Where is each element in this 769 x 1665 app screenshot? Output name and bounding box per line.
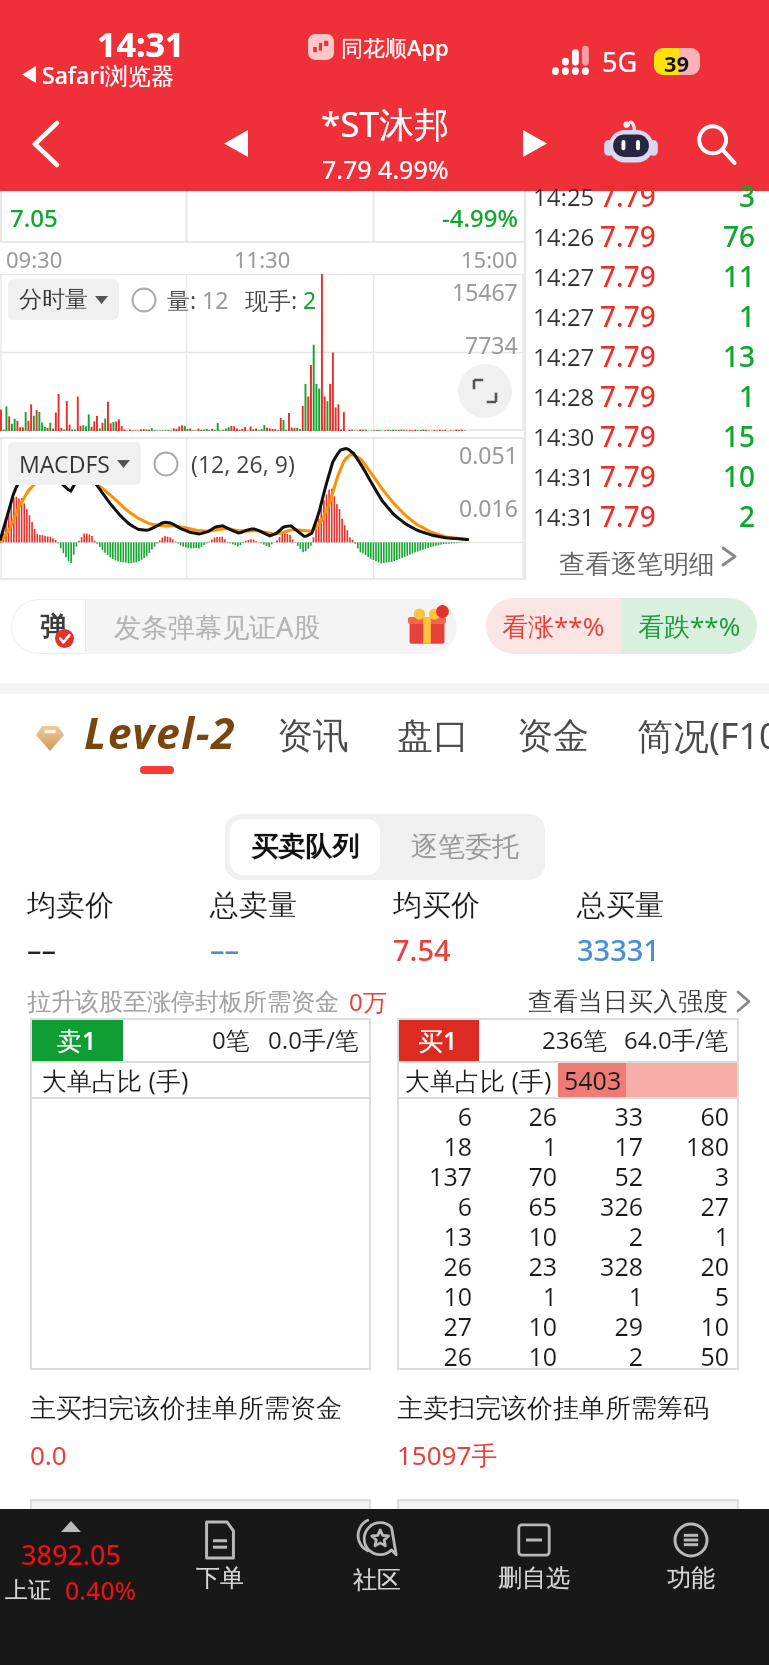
button[interactable]: 资讯 bbox=[277, 713, 349, 764]
staticText: 7.54 bbox=[393, 930, 451, 969]
staticText: 0万 bbox=[349, 985, 387, 1018]
staticText: 15:00 bbox=[461, 244, 518, 274]
button[interactable]: 看跌**% bbox=[621, 598, 757, 654]
staticText: 11:30 bbox=[234, 244, 291, 274]
staticText: 14:25 bbox=[533, 180, 595, 213]
button[interactable]: 14:27 bbox=[533, 296, 756, 336]
staticText: 看涨**% bbox=[502, 608, 605, 644]
button[interactable]: 删自选 bbox=[455, 1509, 612, 1665]
staticText: 5 bbox=[653, 1279, 729, 1309]
button[interactable]: 简况(F10 bbox=[637, 711, 769, 766]
button[interactable]: 看涨**% bbox=[486, 598, 621, 654]
staticText: 均卖价 bbox=[27, 887, 114, 924]
staticText: 社区 bbox=[353, 1565, 401, 1595]
staticText: 10 bbox=[482, 1339, 557, 1369]
staticText: 7.79 bbox=[600, 257, 656, 295]
staticText: 65 bbox=[482, 1189, 557, 1219]
staticText: 14:31 bbox=[97, 21, 185, 67]
button[interactable]: 3892.05 bbox=[0, 1509, 142, 1665]
staticText: 盘口 bbox=[397, 713, 469, 758]
staticText: 26 bbox=[397, 1339, 472, 1369]
button[interactable]: 下单 bbox=[142, 1509, 298, 1665]
staticText: 查看当日买入强度 bbox=[528, 986, 728, 1017]
button[interactable]: 14:27 bbox=[533, 256, 756, 296]
button[interactable]: 查看当日买入强度 bbox=[528, 986, 749, 1017]
staticText: 7.79 bbox=[600, 457, 656, 495]
button[interactable]: 均卖价 bbox=[27, 887, 210, 969]
staticText: 7.79 bbox=[600, 177, 656, 215]
button[interactable]: Back bbox=[0, 96, 92, 191]
button[interactable]: 14:31 bbox=[533, 456, 756, 496]
staticText: 0.0手/笔 bbox=[268, 1023, 359, 1056]
button[interactable]: Fullscreen bbox=[458, 364, 512, 418]
staticText: 7.79 bbox=[600, 497, 656, 535]
staticText: 0.016 bbox=[459, 492, 518, 523]
button[interactable]: 14:28 bbox=[533, 376, 756, 416]
button[interactable]: 弹 bbox=[11, 599, 457, 654]
staticText: 2 bbox=[567, 1339, 643, 1369]
button[interactable]: 14:26 bbox=[533, 216, 756, 256]
staticText: 1 bbox=[653, 1219, 729, 1249]
staticText: 10 bbox=[482, 1309, 557, 1339]
staticText: 大单占比 (手) bbox=[42, 1063, 189, 1097]
button[interactable]: 总买量 bbox=[577, 887, 761, 969]
staticText: 1 bbox=[739, 377, 756, 415]
button[interactable]: 分时量 bbox=[8, 279, 119, 320]
staticText: 简况(F10 bbox=[637, 711, 769, 760]
button[interactable]: 查看逐笔明细 bbox=[524, 548, 769, 565]
button[interactable]: 14:25 bbox=[533, 176, 756, 216]
staticText: 卖1 bbox=[57, 1023, 97, 1057]
staticText: 14:31 bbox=[533, 460, 595, 493]
staticText: 15097手 bbox=[397, 1437, 498, 1473]
staticText: 20 bbox=[653, 1249, 729, 1279]
staticText: 买1 bbox=[418, 1023, 458, 1057]
button[interactable]: 均买价 bbox=[393, 887, 577, 969]
staticText: 15 bbox=[723, 417, 756, 455]
button[interactable]: Search bbox=[673, 96, 759, 191]
button[interactable]: 14:30 bbox=[533, 416, 756, 456]
staticText: 7.79 bbox=[600, 217, 656, 255]
staticText: 2 bbox=[739, 497, 756, 535]
button[interactable]: AI assistant bbox=[591, 104, 671, 184]
button[interactable]: 总卖量 bbox=[210, 887, 393, 969]
staticText: 主买扫完该价挂单所需资金 bbox=[30, 1392, 342, 1425]
button[interactable]: 14:27 bbox=[533, 336, 756, 376]
staticText: 23 bbox=[482, 1249, 557, 1279]
staticText: 14:27 bbox=[533, 340, 595, 373]
staticText: 7.79 bbox=[600, 417, 656, 455]
staticText: 功能 bbox=[667, 1563, 715, 1593]
staticText: 64.0手/笔 bbox=[624, 1023, 729, 1056]
button[interactable]: 逐笔委托 bbox=[385, 814, 545, 880]
staticText: 14:28 bbox=[533, 380, 595, 413]
staticText: 拉升该股至涨停封板所需资金 bbox=[27, 987, 339, 1017]
button[interactable]: 资金 bbox=[517, 713, 589, 764]
staticText: 逐笔委托 bbox=[411, 830, 519, 864]
staticText: 7.79 4.99% bbox=[322, 152, 449, 186]
staticText: 18 bbox=[397, 1129, 472, 1159]
staticText: 5G bbox=[602, 43, 638, 80]
staticText: 33 bbox=[567, 1099, 643, 1129]
button[interactable]: MACDFS bbox=[8, 442, 141, 485]
staticText: 0.40% bbox=[65, 1573, 137, 1607]
staticText: 看跌**% bbox=[638, 608, 741, 644]
staticText: 上证 bbox=[5, 1576, 51, 1605]
staticText: 1 bbox=[482, 1279, 557, 1309]
staticText: –– bbox=[27, 930, 57, 969]
staticText: 17 bbox=[567, 1129, 643, 1159]
staticText: 3 bbox=[653, 1159, 729, 1189]
staticText: 总买量 bbox=[577, 887, 664, 924]
staticText: 326 bbox=[567, 1189, 643, 1219]
button[interactable]: 功能 bbox=[612, 1509, 769, 1665]
staticText: 6 bbox=[397, 1099, 472, 1129]
button[interactable]: Next stock bbox=[491, 96, 579, 191]
staticText: 60 bbox=[653, 1099, 729, 1129]
button[interactable]: 买卖队列 bbox=[230, 819, 380, 875]
button[interactable]: 14:31 bbox=[533, 496, 756, 536]
staticText: 买卖队列 bbox=[251, 830, 359, 864]
staticText: –– bbox=[210, 930, 240, 969]
button[interactable]: 社区 bbox=[298, 1509, 455, 1665]
staticText: 总卖量 bbox=[210, 887, 297, 924]
button[interactable]: Level-2 bbox=[36, 703, 237, 774]
button[interactable]: 盘口 bbox=[397, 713, 469, 764]
button[interactable]: Previous stock bbox=[192, 96, 280, 191]
